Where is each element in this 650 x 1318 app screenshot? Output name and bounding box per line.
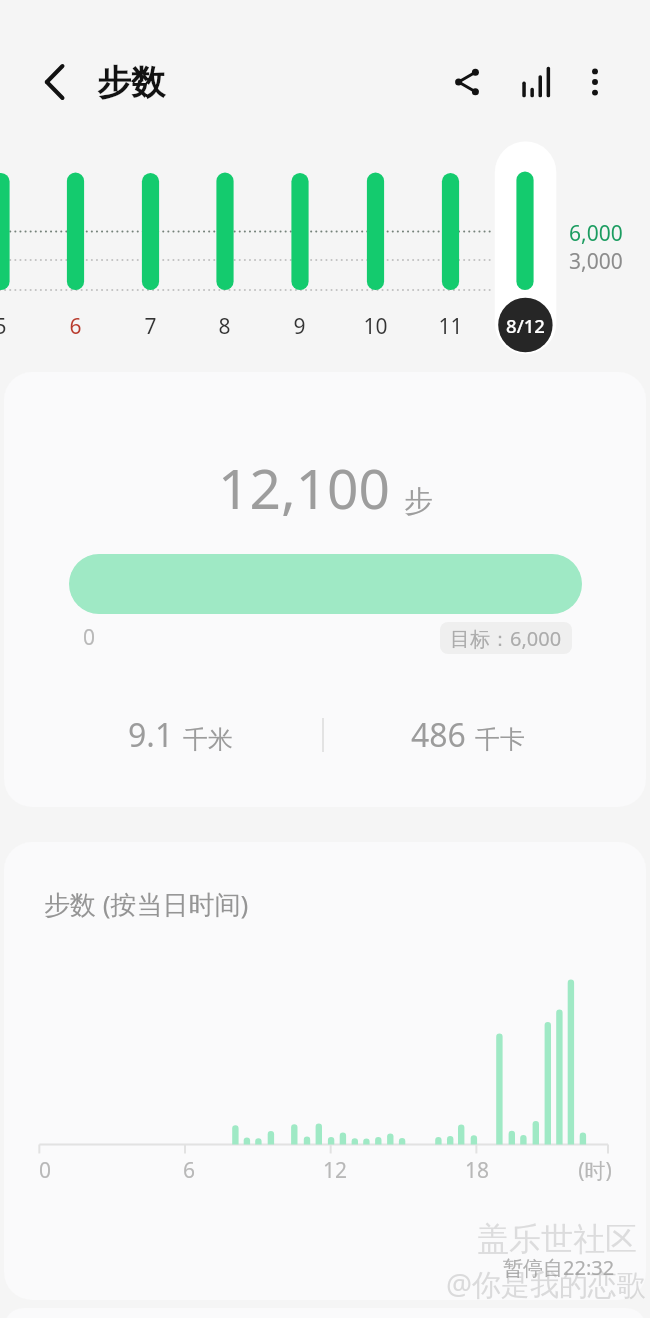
staticText: 12,100: [218, 450, 391, 525]
staticText: 3,000: [569, 247, 623, 276]
button[interactable]: [4, 842, 646, 1300]
staticText: 8/12: [506, 313, 545, 338]
button[interactable]: 8: [199, 305, 249, 347]
staticText: 千卡: [475, 724, 525, 755]
staticText: 6: [69, 312, 82, 341]
button[interactable]: 步数: [97, 60, 165, 103]
staticText: 6: [164, 1156, 214, 1185]
button[interactable]: Share: [439, 54, 495, 110]
staticText: 步: [404, 483, 433, 520]
staticText: 486: [411, 713, 466, 757]
staticText: 0: [20, 1156, 70, 1185]
staticText: 5: [0, 312, 7, 341]
staticText: 9.1: [128, 713, 174, 757]
staticText: 6,000: [569, 219, 623, 248]
staticText: 8: [218, 312, 231, 341]
staticText: 步数: [97, 61, 165, 104]
staticText: 18: [452, 1156, 502, 1185]
button[interactable]: 7: [125, 305, 175, 347]
staticText: 0: [83, 623, 96, 652]
button[interactable]: 11: [425, 305, 475, 347]
button[interactable]: Statistics: [508, 54, 564, 110]
staticText: 7: [144, 312, 157, 341]
button[interactable]: 6: [50, 305, 100, 347]
staticText: 暂停自22:32: [503, 1254, 615, 1281]
staticText: 11: [438, 312, 463, 341]
staticText: 10: [363, 312, 388, 341]
button[interactable]: 9: [274, 305, 324, 347]
button[interactable]: [4, 372, 646, 807]
staticText: 目标：6,000: [450, 625, 562, 652]
staticText: 步数 (按当日时间): [44, 886, 249, 922]
staticText: 盖乐世社区: [477, 1219, 637, 1259]
staticText: (时): [570, 1156, 620, 1185]
staticText: 千米: [183, 724, 233, 755]
staticText: 12: [310, 1156, 360, 1185]
button[interactable]: 5: [0, 305, 25, 347]
button[interactable]: Back: [27, 54, 83, 110]
button[interactable]: 8/12: [498, 298, 553, 352]
staticText: @你是我的恋歌: [446, 1264, 647, 1304]
staticText: 9: [293, 312, 306, 341]
button[interactable]: 10: [350, 305, 400, 347]
button[interactable]: More options: [567, 54, 623, 110]
